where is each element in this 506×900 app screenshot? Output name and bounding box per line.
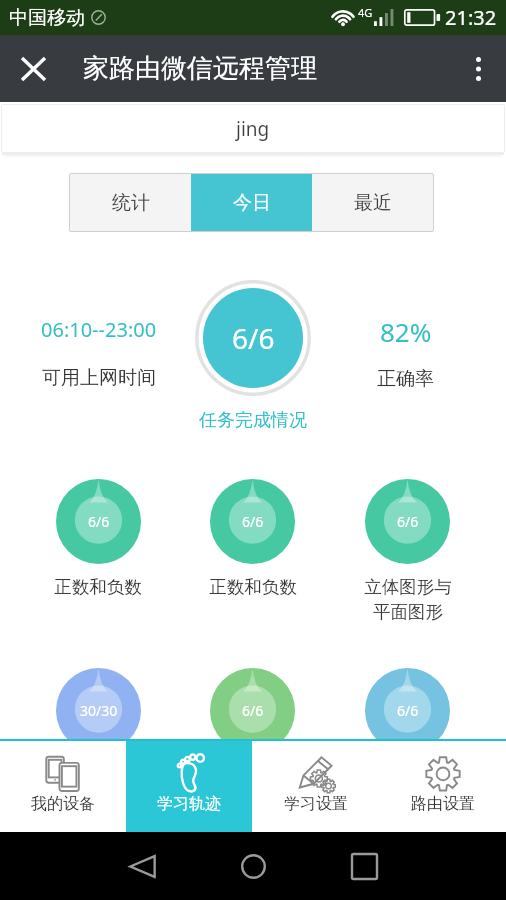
staticText: 06:10--23:00 xyxy=(41,316,157,343)
staticText: 学习轨迹 xyxy=(157,794,221,814)
button[interactable]: Close xyxy=(0,35,67,102)
staticText: 4G xyxy=(358,5,373,20)
button[interactable]: 学习轨迹 xyxy=(126,741,252,832)
staticText: 6/6 xyxy=(88,512,110,531)
button[interactable]: 最近 xyxy=(312,174,433,231)
staticText: 6/6 xyxy=(242,512,264,531)
staticText: 30/30 xyxy=(80,701,118,720)
button[interactable]: 今日 xyxy=(191,174,312,231)
button[interactable]: jing xyxy=(1,104,505,153)
button[interactable]: More options xyxy=(450,35,506,102)
staticText: 最近 xyxy=(354,191,392,215)
staticText: 82% xyxy=(380,314,432,349)
staticText: 正数和负数 xyxy=(54,576,142,598)
staticText: 正数和负数 xyxy=(209,576,297,598)
button[interactable]: Recents xyxy=(340,842,388,890)
staticText: 6/6 xyxy=(242,701,264,720)
staticText: 路由设置 xyxy=(411,794,475,814)
button[interactable]: 6/6 xyxy=(330,479,485,623)
staticText: 今日 xyxy=(233,191,271,215)
button[interactable]: 6/6 xyxy=(21,479,175,598)
button[interactable]: 6/6 xyxy=(175,479,330,598)
staticText: 6/6 xyxy=(397,512,419,531)
staticText: 6/6 xyxy=(232,319,275,357)
button[interactable]: Home xyxy=(229,842,277,890)
staticText: 家路由微信远程管理 xyxy=(83,52,317,85)
staticText: 学习设置 xyxy=(284,794,348,814)
staticText: jing xyxy=(236,116,270,142)
button[interactable]: 统计 xyxy=(70,174,191,231)
staticText: 立体图形与 平面图形 xyxy=(364,576,452,623)
button[interactable]: 学习设置 xyxy=(252,741,379,832)
button[interactable]: 我的设备 xyxy=(0,741,126,832)
staticText: 可用上网时间 xyxy=(42,366,156,390)
button[interactable]: 6/6 xyxy=(330,668,485,753)
staticText: 中国移动 xyxy=(9,6,85,30)
staticText: 6/6 xyxy=(397,701,419,720)
staticText: 任务完成情况 xyxy=(199,409,307,432)
button[interactable]: 30/30 xyxy=(21,668,175,753)
button[interactable]: Back xyxy=(118,842,166,890)
staticText: 我的设备 xyxy=(31,794,95,814)
button[interactable]: 路由设置 xyxy=(379,741,506,832)
staticText: 21:32 xyxy=(445,4,497,31)
button[interactable]: 6/6 xyxy=(175,668,330,753)
button[interactable]: 6/6 xyxy=(195,280,311,396)
staticText: 统计 xyxy=(112,191,150,215)
staticText: 正确率 xyxy=(377,367,434,391)
